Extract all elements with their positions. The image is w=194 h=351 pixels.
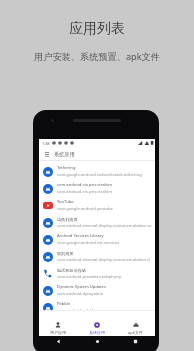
staticText: com.android.providers.telephony [57, 274, 121, 280]
button[interactable]: Pebble [39, 299, 155, 316]
button[interactable]: YouTube [39, 197, 155, 214]
staticText: Tethering [57, 165, 76, 171]
button[interactable]: 双刘海屏 [39, 248, 155, 265]
staticText: 电话和短信存储 [57, 268, 86, 273]
staticText: com.android.cts.priv.ctsshim [57, 189, 113, 195]
button[interactable]: apk文件 [116, 311, 155, 336]
staticText: com.google.android.ext.services [57, 240, 120, 246]
button[interactable]: 电话和短信存储 [39, 265, 155, 282]
staticText: com.google.android.youtube [57, 206, 113, 212]
button[interactable]: 边角刘海屏 [39, 214, 155, 231]
button[interactable]: Open navigation menu [43, 150, 51, 158]
staticText: com.google.android.networkstack.tetherin… [57, 172, 142, 178]
staticText: 边角刘海屏 [57, 217, 78, 222]
staticText: com.android.pebble [57, 308, 96, 314]
staticText: 系统应用 [54, 151, 75, 158]
staticText: com.android.internal.display.cutout.emul… [57, 223, 152, 229]
staticText: com.android.dynsystem [57, 291, 104, 297]
button[interactable]: Dynamic System Updates [39, 282, 155, 299]
staticText: Dynamic System Updates [57, 284, 106, 290]
staticText: 1:38 [42, 141, 50, 146]
staticText: YouTube [57, 199, 74, 205]
staticText: 系统应用 [89, 330, 105, 335]
staticText: 应用列表 [69, 20, 125, 38]
button[interactable]: com.android.cts.priv.ctsshim [39, 180, 155, 197]
button[interactable]: Tethering [39, 163, 155, 180]
button[interactable]: 用户应用 [39, 311, 77, 336]
button[interactable]: Android Services Library [39, 231, 155, 248]
staticText: Pebble [57, 301, 71, 307]
staticText: com.android.internal.display.cutout.emul… [57, 257, 152, 263]
staticText: 用户应用 [50, 330, 66, 335]
staticText: 用户安装、系统预置、apk文件 [34, 50, 160, 63]
staticText: Android Services Library [57, 233, 104, 239]
staticText: apk文件 [128, 330, 143, 335]
staticText: com.android.cts.priv.ctsshim [57, 182, 113, 188]
staticText: 双刘海屏 [57, 251, 74, 256]
button[interactable]: 系统应用 [77, 311, 116, 336]
